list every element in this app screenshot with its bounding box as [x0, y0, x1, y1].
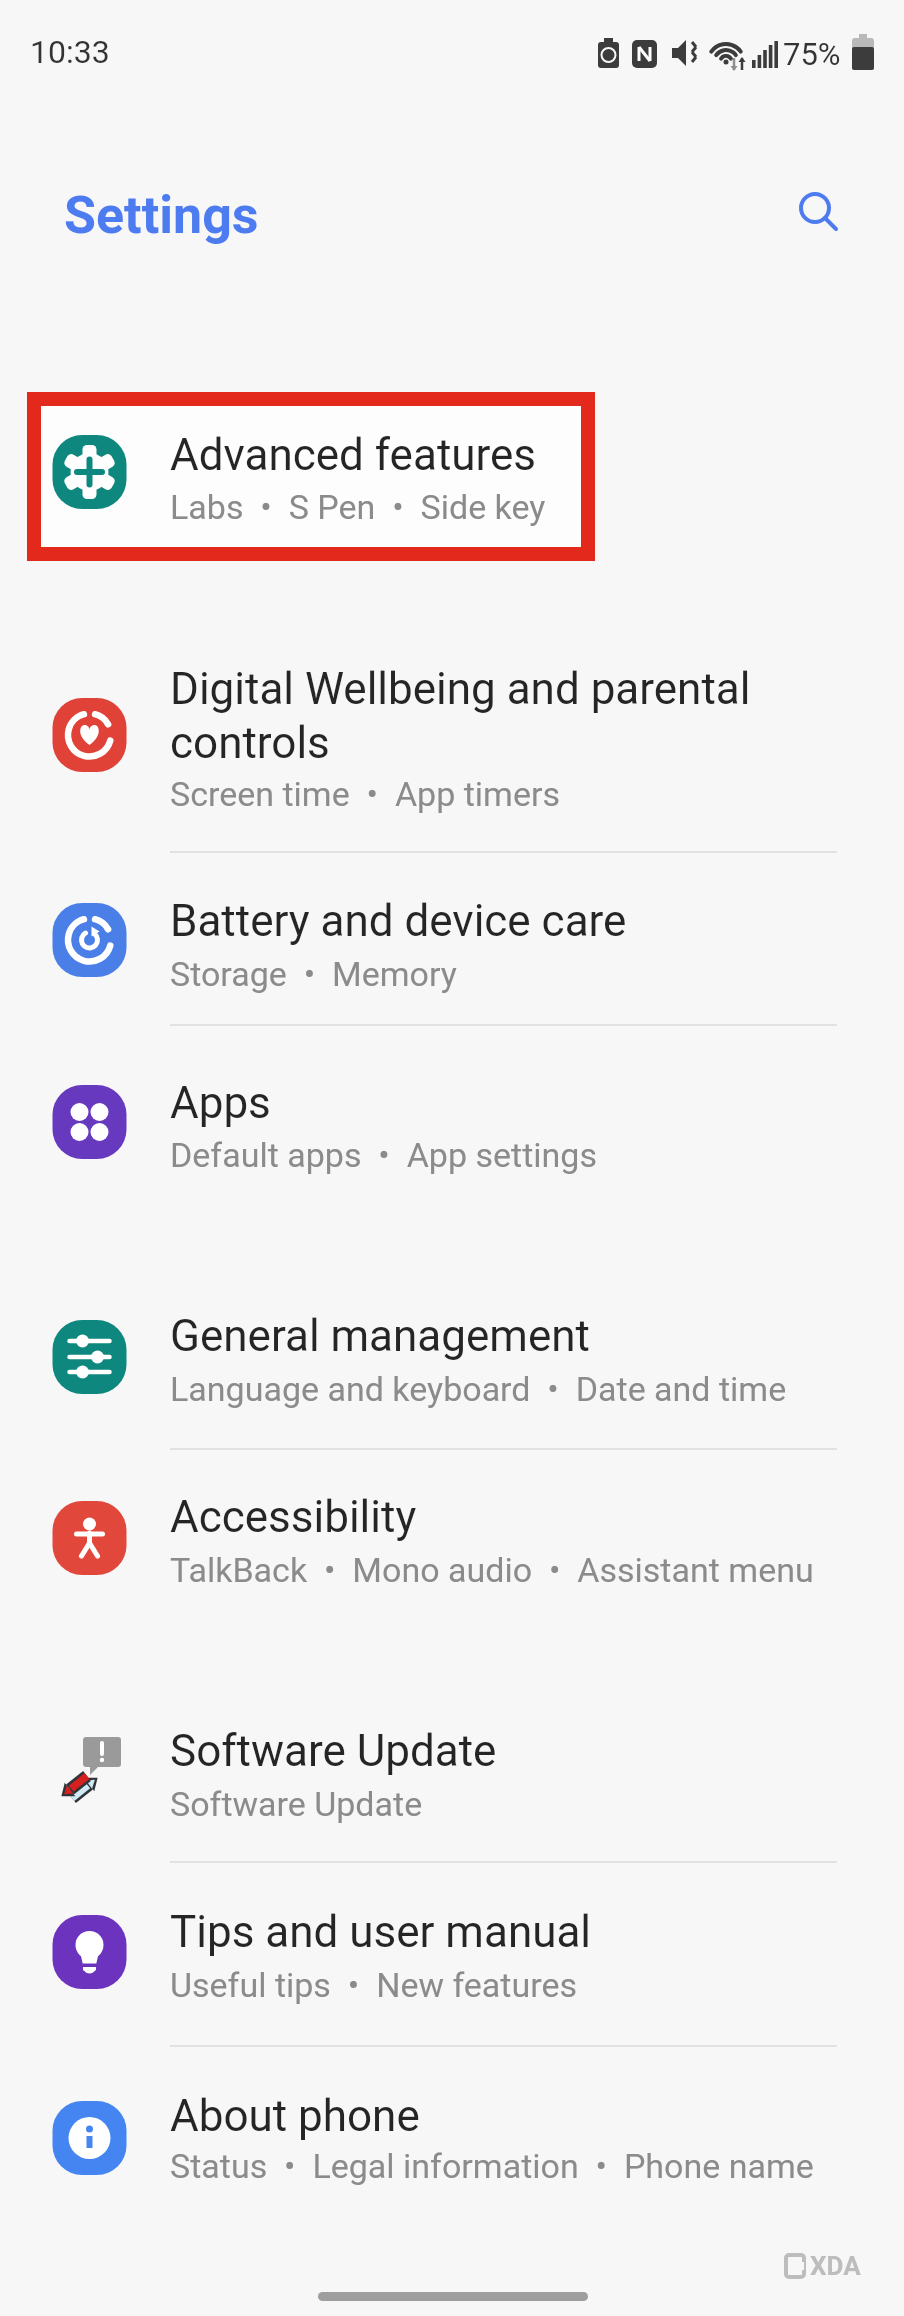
button[interactable]	[27, 1468, 877, 1648]
button[interactable]	[780, 180, 856, 256]
staticText: Settings	[64, 185, 259, 246]
staticText: Status • Legal information • Phone name	[170, 2146, 814, 2186]
button[interactable]	[27, 2062, 877, 2232]
button[interactable]	[27, 1280, 877, 1450]
staticText: Advanced features	[170, 429, 537, 481]
staticText: Accessibility	[170, 1491, 417, 1543]
button[interactable]	[27, 406, 877, 547]
button[interactable]	[27, 1052, 877, 1232]
staticText: Storage • Memory	[170, 954, 457, 994]
staticText: Apps	[170, 1077, 271, 1129]
staticText: 10:33	[30, 33, 110, 71]
staticText: Tips and user manual	[170, 1906, 592, 1958]
staticText: Labs • S Pen • Side key	[170, 487, 546, 527]
staticText: Digital Wellbeing and parental controls	[170, 663, 751, 768]
staticText: About phone	[170, 2090, 420, 2142]
staticText: 75%	[783, 36, 841, 72]
staticText: Battery and device care	[170, 895, 627, 947]
staticText: Default apps • App settings	[170, 1135, 597, 1175]
button[interactable]	[27, 1882, 877, 2052]
button[interactable]	[27, 660, 877, 850]
button[interactable]	[27, 870, 877, 1050]
staticText: General management	[170, 1310, 590, 1362]
staticText: XDA	[810, 2251, 861, 2281]
staticText: Useful tips • New features	[170, 1965, 577, 2005]
staticText: Software Update	[170, 1725, 497, 1777]
button[interactable]	[27, 1700, 877, 1860]
staticText: Software Update	[170, 1784, 423, 1824]
staticText: TalkBack • Mono audio • Assistant menu	[170, 1550, 814, 1590]
staticText: Language and keyboard • Date and time	[170, 1369, 787, 1409]
staticText: Screen time • App timers	[170, 774, 561, 814]
